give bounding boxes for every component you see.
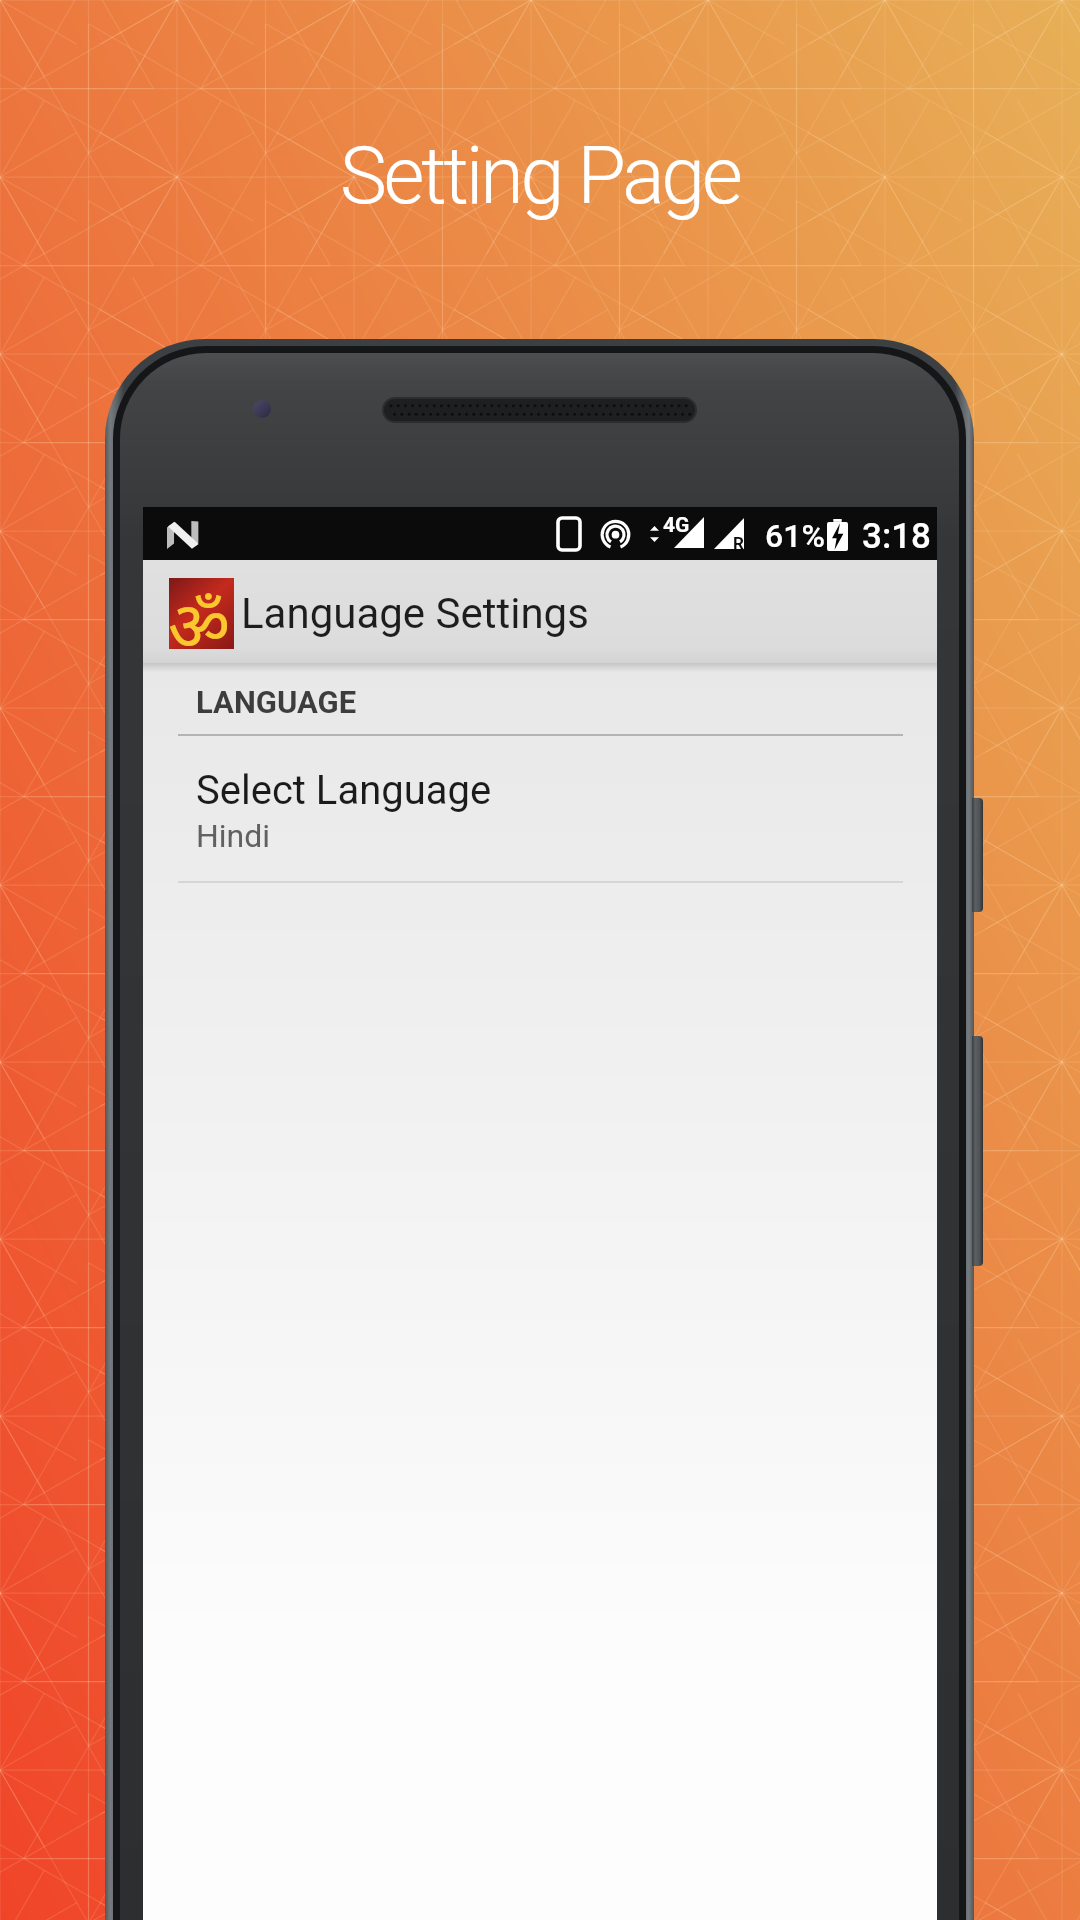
staticText: LANGUAGE: [196, 684, 357, 720]
staticText: Language Settings: [241, 589, 589, 638]
staticText: Select Language: [196, 767, 492, 814]
staticText: R: [733, 533, 744, 553]
staticText: 61%: [765, 517, 825, 555]
staticText: Hindi: [196, 817, 271, 855]
button[interactable]: App icon, Om: [169, 578, 234, 649]
staticText: ॐ: [168, 577, 231, 648]
staticText: 4G: [663, 513, 690, 538]
button[interactable]: Select Language: [143, 736, 937, 881]
staticText: 3:18: [862, 516, 931, 557]
staticText: Setting Page: [340, 130, 740, 223]
